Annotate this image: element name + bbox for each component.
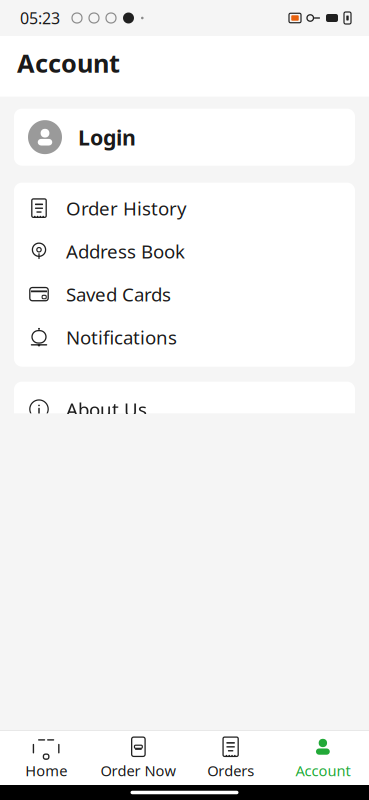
button[interactable]: Login [14, 109, 355, 166]
button[interactable]: Orders [184, 731, 277, 785]
staticText: Address Book [66, 239, 185, 263]
staticText: Home [25, 761, 67, 780]
staticText: Orders [207, 761, 254, 780]
staticText: 05:23 [20, 7, 60, 29]
button[interactable]: Saved Cards [14, 273, 355, 316]
button[interactable]: Notifications [14, 316, 355, 359]
button[interactable]: Order History [14, 187, 355, 230]
button[interactable]: Order Now [92, 731, 184, 785]
button[interactable]: Account [277, 731, 369, 785]
button[interactable]: About Us [14, 388, 355, 431]
staticText: Login [78, 123, 136, 151]
staticText: Account [17, 46, 120, 80]
staticText: Notifications [66, 325, 177, 349]
button[interactable]: Address Book [14, 230, 355, 273]
staticText: About Us [66, 397, 147, 421]
staticText: Order Now [100, 761, 176, 780]
staticText: Saved Cards [66, 282, 171, 306]
staticText: Order History [66, 196, 187, 220]
staticText: Account [295, 761, 350, 780]
button[interactable]: Home [0, 731, 92, 785]
